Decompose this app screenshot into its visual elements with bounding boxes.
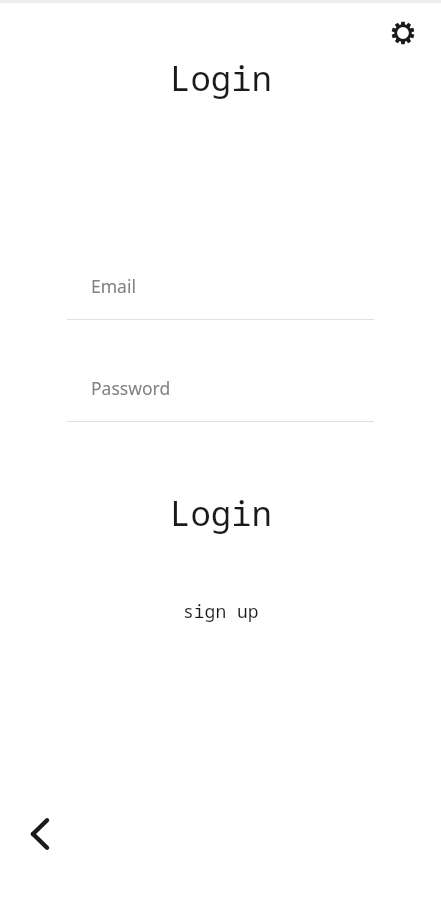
button[interactable]: Password (67, 358, 374, 422)
staticText: sign up (183, 599, 259, 624)
staticText: Login (170, 55, 272, 101)
button[interactable]: Settings (379, 9, 427, 57)
staticText: Password (91, 376, 171, 400)
button[interactable]: Back (11, 805, 69, 863)
staticText: Email (91, 274, 136, 298)
button[interactable]: Login (156, 485, 286, 541)
staticText: Login (170, 490, 272, 536)
button[interactable]: Email (67, 256, 374, 320)
button[interactable]: sign up (169, 594, 273, 629)
